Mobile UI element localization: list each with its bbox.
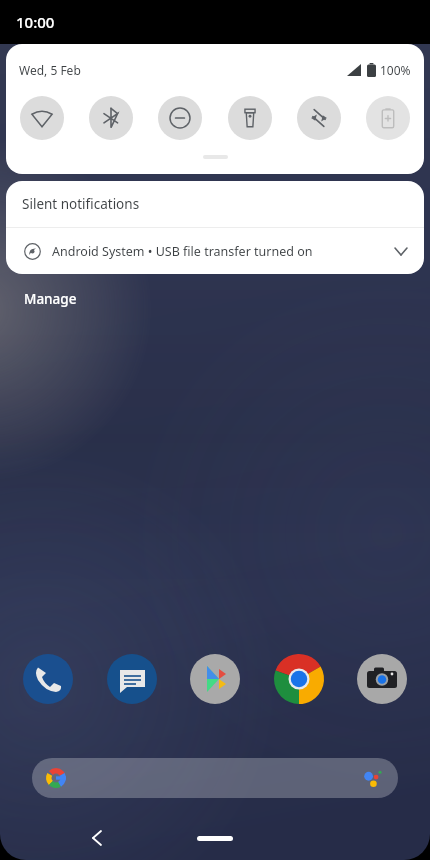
other: Battery (367, 63, 376, 77)
button[interactable]: Bluetooth (89, 96, 133, 140)
button[interactable]: Expand notification (386, 236, 416, 266)
button[interactable]: Camera (356, 653, 408, 705)
button[interactable]: Messages (106, 653, 158, 705)
button[interactable]: Google search (32, 758, 398, 798)
button[interactable]: Phone (22, 653, 74, 705)
button[interactable]: Do Not Disturb (158, 96, 202, 140)
staticText: 10:00 (16, 12, 55, 32)
button[interactable]: Battery Saver (366, 96, 410, 140)
other: Signal strength (347, 64, 361, 76)
button[interactable]: Home (195, 827, 235, 849)
staticText: Manage (24, 290, 77, 308)
button[interactable] (203, 155, 228, 159)
button[interactable]: Silent notifications (6, 181, 424, 227)
button[interactable]: Chrome (273, 653, 325, 705)
staticText: Android System • USB file transfer turne… (52, 243, 313, 260)
button[interactable]: Back (80, 821, 114, 855)
button[interactable]: Android System • USB file transfer turne… (6, 228, 424, 274)
button[interactable]: Play Store (189, 653, 241, 705)
button[interactable]: Manage (20, 286, 81, 312)
button[interactable]: Wed, 5 Feb (19, 62, 81, 78)
staticText: Silent notifications (22, 195, 140, 213)
button[interactable]: Flashlight (228, 96, 272, 140)
button[interactable]: Wi-Fi (20, 96, 64, 140)
staticText: 100% (380, 62, 411, 78)
button[interactable]: Auto-rotate (297, 96, 341, 140)
